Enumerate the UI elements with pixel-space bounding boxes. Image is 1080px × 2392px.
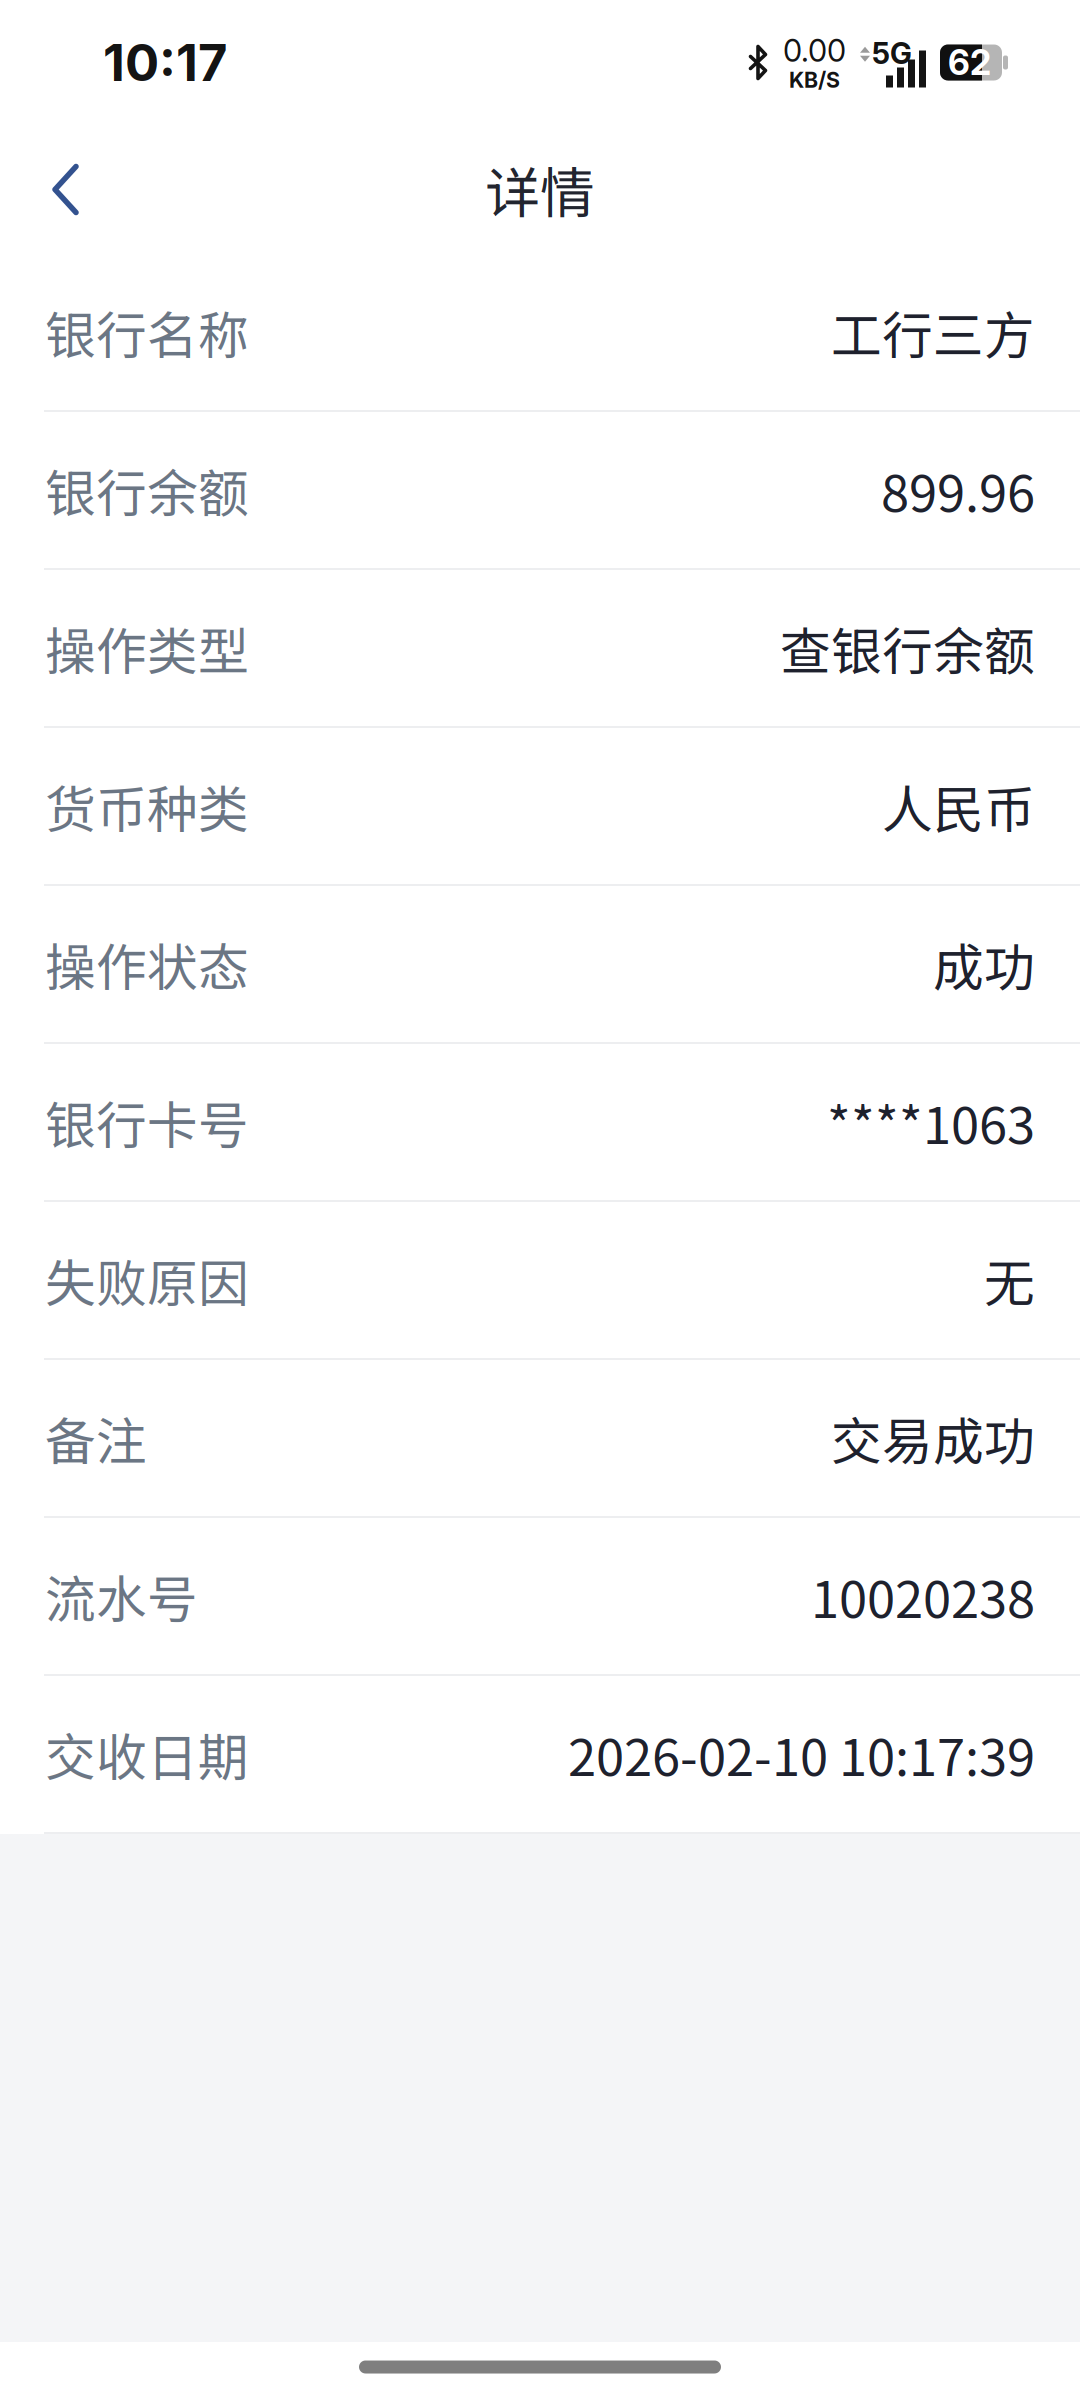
staticText: 5G: [872, 35, 912, 71]
staticText: 成功: [933, 927, 1035, 1001]
staticText: 10020238: [811, 1559, 1035, 1633]
button[interactable]: 货币种类: [0, 728, 1080, 886]
staticText: 交易成功: [831, 1401, 1035, 1475]
button[interactable]: 备注: [0, 1360, 1080, 1518]
staticText: 失败原因: [45, 1243, 249, 1317]
button[interactable]: 交收日期: [0, 1676, 1080, 1834]
button[interactable]: 银行余额: [0, 412, 1080, 570]
staticText: 备注: [45, 1401, 147, 1475]
staticText: 交收日期: [45, 1717, 249, 1791]
staticText: 10:17: [103, 32, 227, 93]
staticText: ****1063: [827, 1085, 1035, 1159]
staticText: 银行余额: [45, 453, 249, 527]
staticText: 操作类型: [45, 611, 249, 685]
staticText: 0.00: [783, 32, 846, 69]
button[interactable]: 操作状态: [0, 886, 1080, 1044]
staticText: 无: [984, 1243, 1035, 1317]
staticText: 工行三方: [831, 295, 1035, 369]
button[interactable]: 银行卡号: [0, 1044, 1080, 1202]
button[interactable]: 失败原因: [0, 1202, 1080, 1360]
button[interactable]: 流水号: [0, 1518, 1080, 1676]
staticText: 62: [948, 41, 991, 83]
staticText: 899.96: [881, 453, 1035, 527]
staticText: 详情: [485, 150, 595, 229]
button[interactable]: 操作类型: [0, 570, 1080, 728]
staticText: 2026-02-10 10:17:39: [568, 1717, 1035, 1791]
staticText: 流水号: [45, 1559, 198, 1633]
staticText: 银行卡号: [45, 1085, 249, 1159]
button[interactable]: 银行名称: [0, 254, 1080, 412]
staticText: 人民币: [882, 769, 1035, 843]
staticText: 查银行余额: [780, 611, 1035, 685]
staticText: KB/S: [789, 67, 840, 93]
staticText: 银行名称: [45, 295, 249, 369]
button[interactable]: Back: [0, 125, 135, 254]
staticText: 货币种类: [45, 769, 249, 843]
staticText: 操作状态: [45, 927, 249, 1001]
